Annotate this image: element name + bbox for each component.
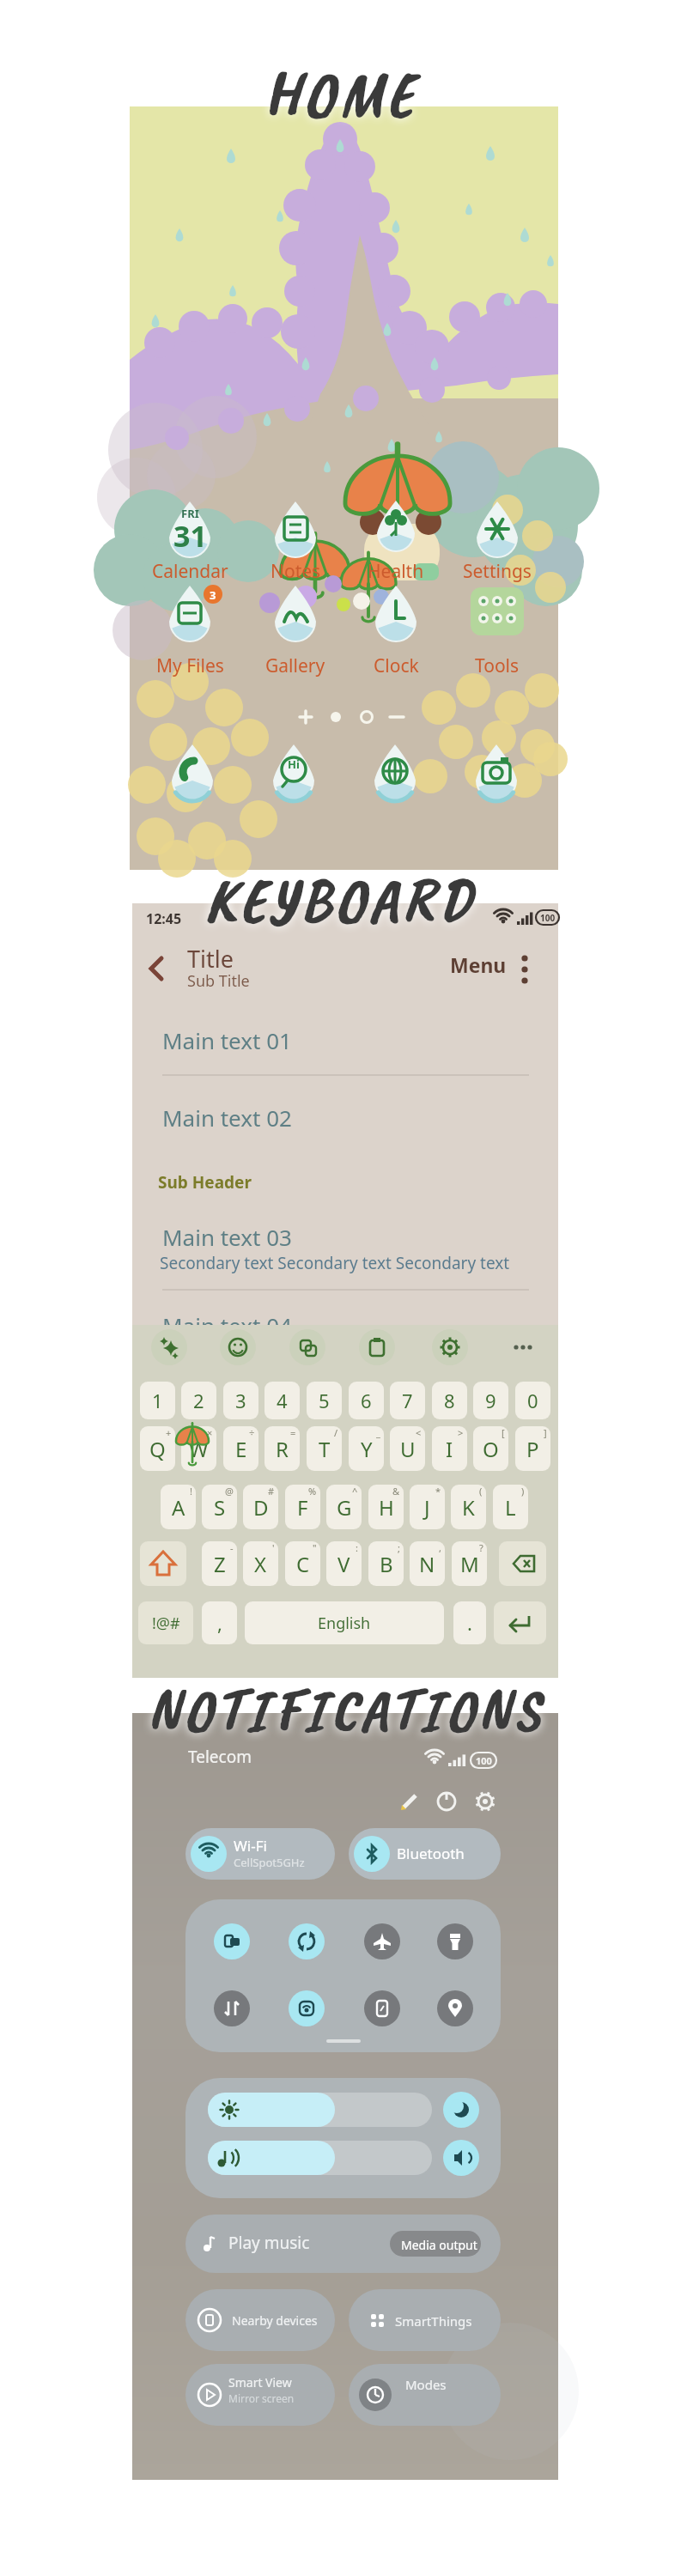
staticText: ,: [439, 1541, 441, 1554]
staticText: !@#: [152, 1613, 180, 1634]
button[interactable]: W: [181, 1426, 216, 1471]
button[interactable]: [265, 501, 317, 567]
button[interactable]: 8: [432, 1382, 467, 1419]
staticText: 7: [402, 1388, 413, 1413]
staticText: ': [272, 1541, 275, 1554]
button[interactable]: U: [390, 1426, 425, 1471]
button[interactable]: L: [493, 1485, 528, 1529]
button[interactable]: [499, 1541, 546, 1586]
button[interactable]: [185, 2078, 501, 2198]
button[interactable]: 4: [264, 1382, 300, 1419]
staticText: B: [380, 1550, 393, 1578]
staticText: L: [505, 1493, 516, 1522]
button[interactable]: E: [223, 1426, 258, 1471]
staticText: Main text 01: [162, 1025, 292, 1055]
button[interactable]: [164, 586, 216, 651]
button[interactable]: O: [473, 1426, 508, 1471]
button[interactable]: S: [202, 1485, 237, 1529]
staticText: ÷: [249, 1426, 255, 1439]
button[interactable]: 2: [181, 1382, 216, 1419]
button[interactable]: [349, 2364, 501, 2426]
button[interactable]: [367, 501, 418, 567]
staticText: Wi-Fi: [234, 1836, 267, 1856]
button[interactable]: [349, 2289, 501, 2351]
button[interactable]: C: [285, 1541, 320, 1586]
staticText: U: [400, 1435, 416, 1463]
button[interactable]: .: [453, 1601, 486, 1644]
staticText: Mirror screen: [228, 2391, 295, 2405]
staticText: /: [334, 1426, 338, 1439]
staticText: -: [230, 1541, 234, 1554]
button[interactable]: P: [515, 1426, 550, 1471]
button[interactable]: [265, 586, 317, 651]
staticText: Nearby devices: [232, 2312, 318, 2329]
button[interactable]: 5: [307, 1382, 342, 1419]
button[interactable]: I: [432, 1426, 467, 1471]
button[interactable]: R: [264, 1426, 300, 1471]
button[interactable]: 9: [473, 1382, 508, 1419]
staticText: Media output: [401, 2237, 477, 2253]
staticText: Notes: [271, 559, 321, 584]
staticText: *: [435, 1485, 441, 1498]
staticText: &: [392, 1485, 400, 1498]
button[interactable]: [471, 745, 522, 811]
button[interactable]: [468, 501, 520, 567]
staticText: Play music: [228, 2232, 310, 2254]
staticText: Title: [187, 943, 234, 975]
staticText: 100: [476, 1754, 492, 1767]
button[interactable]: Q: [140, 1426, 175, 1471]
button[interactable]: [140, 1541, 186, 1586]
staticText: 9: [485, 1388, 496, 1413]
button[interactable]: [349, 1828, 501, 1880]
staticText: English: [318, 1613, 371, 1634]
staticText: NOTIFICATIONS: [105, 1671, 586, 1749]
button[interactable]: [167, 745, 218, 811]
staticText: Gallery: [265, 653, 325, 678]
staticText: SmartThings: [395, 2312, 472, 2330]
button[interactable]: K: [451, 1485, 486, 1529]
button[interactable]: G: [326, 1485, 362, 1529]
staticText: I: [446, 1435, 453, 1463]
button[interactable]: J: [410, 1485, 445, 1529]
staticText: 5: [319, 1388, 330, 1413]
staticText: T: [319, 1435, 331, 1463]
button[interactable]: Z: [202, 1541, 237, 1586]
button[interactable]: F: [285, 1485, 320, 1529]
button[interactable]: [367, 586, 418, 651]
button[interactable]: English: [245, 1601, 444, 1644]
button[interactable]: 1: [140, 1382, 175, 1419]
button[interactable]: V: [326, 1541, 362, 1586]
button[interactable]: 6: [349, 1382, 384, 1419]
button[interactable]: [494, 1601, 546, 1644]
staticText: %: [308, 1485, 317, 1498]
button[interactable]: H: [368, 1485, 404, 1529]
button[interactable]: M: [452, 1541, 487, 1586]
button[interactable]: A: [161, 1485, 196, 1529]
button[interactable]: 3: [223, 1382, 258, 1419]
button[interactable]: [268, 745, 319, 811]
button[interactable]: !@#: [138, 1601, 193, 1644]
button[interactable]: [185, 1828, 335, 1880]
button[interactable]: [185, 2215, 501, 2273]
button[interactable]: B: [368, 1541, 404, 1586]
button[interactable]: X: [243, 1541, 278, 1586]
button[interactable]: [369, 745, 421, 811]
staticText: Main text 03: [162, 1222, 292, 1252]
button[interactable]: 7: [390, 1382, 425, 1419]
staticText: Telecom: [188, 1746, 252, 1768]
button[interactable]: N: [410, 1541, 445, 1586]
button[interactable]: [185, 2289, 335, 2351]
button[interactable]: 0: [515, 1382, 550, 1419]
staticText: ,: [217, 1610, 222, 1636]
staticText: _: [376, 1426, 380, 1439]
staticText: 100: [540, 912, 556, 924]
button[interactable]: [185, 1899, 501, 2052]
button[interactable]: D: [243, 1485, 278, 1529]
button[interactable]: ,: [202, 1601, 237, 1644]
button[interactable]: [164, 501, 216, 567]
button[interactable]: [468, 586, 520, 651]
button[interactable]: [185, 2364, 335, 2426]
button[interactable]: T: [307, 1426, 342, 1471]
button[interactable]: Y: [349, 1426, 384, 1471]
staticText: Y: [361, 1435, 373, 1463]
